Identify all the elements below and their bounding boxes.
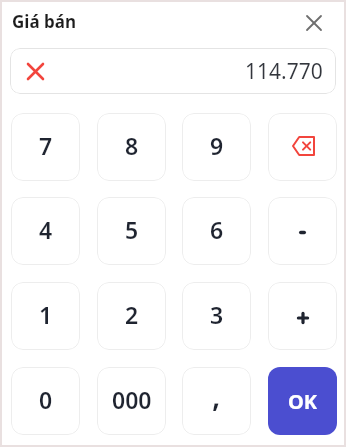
staticText: 6	[210, 214, 224, 245]
button[interactable]: 000	[97, 367, 166, 435]
staticText: 4	[39, 214, 53, 245]
staticText: 0	[39, 384, 53, 415]
button[interactable]	[268, 197, 337, 265]
button[interactable]: 0	[11, 367, 80, 435]
button[interactable]: OK	[268, 367, 337, 435]
staticText: 5	[125, 214, 139, 245]
button[interactable]: ,	[182, 367, 251, 435]
staticText: Giá bán	[12, 10, 76, 33]
staticText: 2	[125, 299, 139, 330]
staticText: 000	[112, 384, 152, 415]
button[interactable]: 2	[97, 282, 166, 350]
button[interactable]: 5	[97, 197, 166, 265]
button[interactable]	[23, 59, 47, 83]
staticText: 9	[210, 130, 224, 161]
button[interactable]	[268, 113, 337, 181]
staticText: 3	[210, 299, 224, 330]
button[interactable]: 1	[11, 282, 80, 350]
staticText: 8	[125, 130, 139, 161]
button[interactable]: 4	[11, 197, 80, 265]
staticText: ,	[212, 375, 221, 416]
button[interactable]: 3	[182, 282, 251, 350]
button[interactable]: 7	[11, 113, 80, 181]
button[interactable]: 8	[97, 113, 166, 181]
staticText: 7	[39, 130, 53, 161]
staticText: 114.770	[245, 57, 323, 86]
button[interactable]	[268, 282, 337, 350]
button[interactable]: 6	[182, 197, 251, 265]
button[interactable]: 9	[182, 113, 251, 181]
staticText: 1	[39, 299, 53, 330]
staticText: OK	[288, 388, 318, 415]
button[interactable]	[301, 10, 326, 35]
